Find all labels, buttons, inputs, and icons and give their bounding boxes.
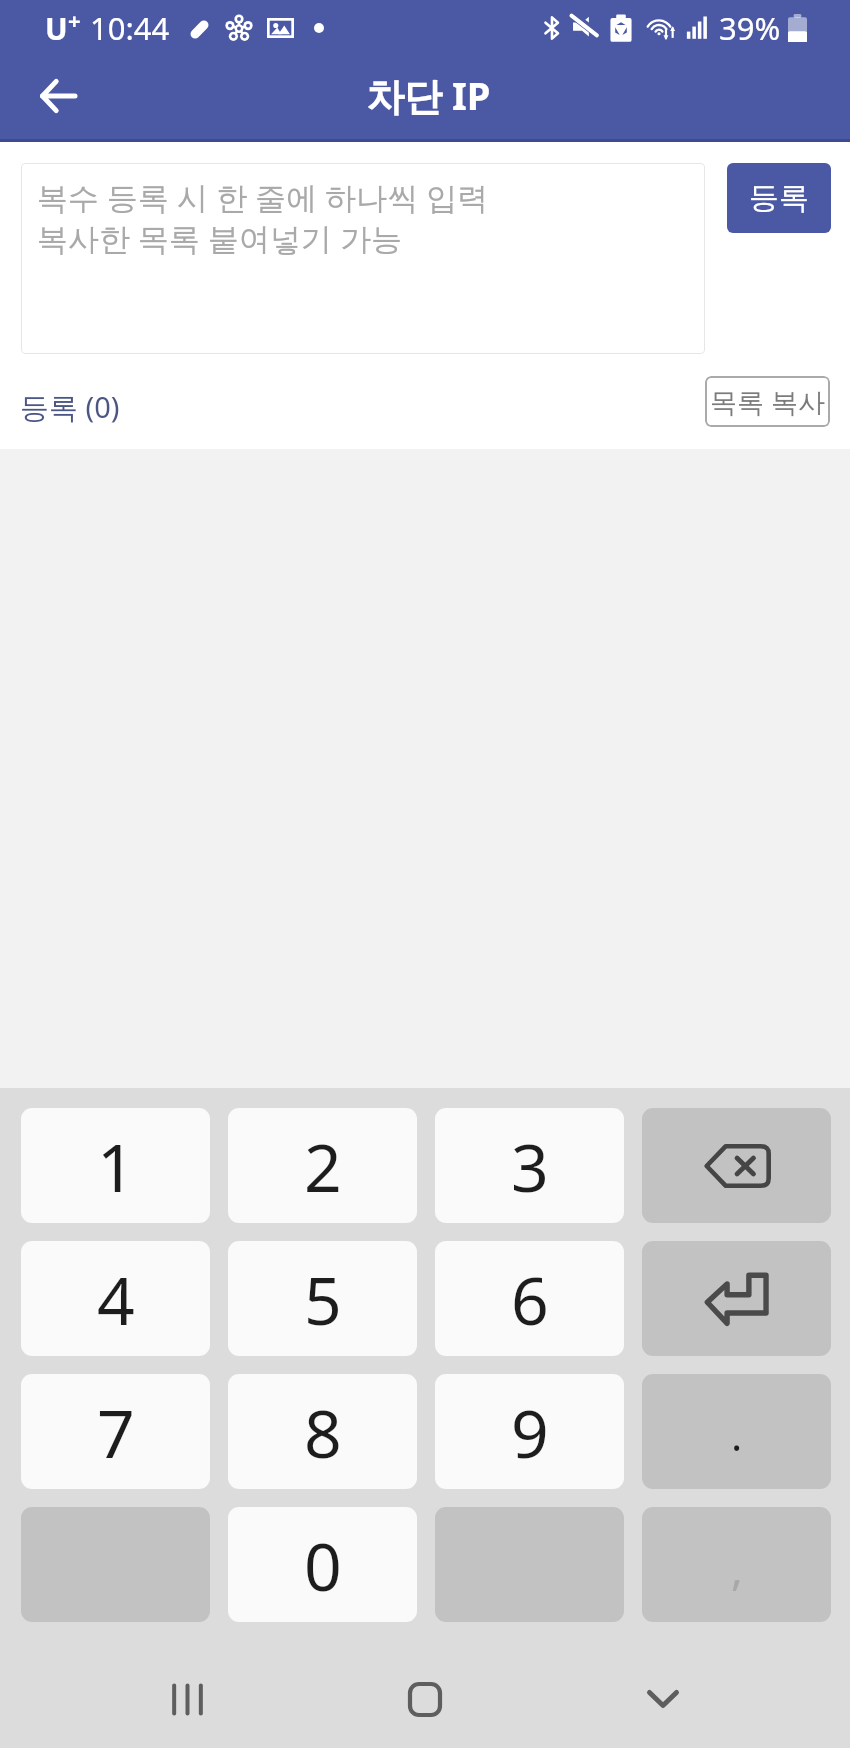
staticText: 7: [97, 1387, 135, 1477]
staticText: 4: [97, 1254, 135, 1344]
staticText: +: [68, 5, 81, 35]
staticText: 복수 등록 시 한 줄에 하나씩 입력 복사한 목록 붙여넣기 가능: [37, 176, 489, 260]
staticText: 5: [304, 1254, 342, 1344]
staticText: 1: [97, 1121, 135, 1211]
staticText: .: [731, 1406, 743, 1463]
button[interactable]: 5: [228, 1241, 417, 1356]
staticText: ,: [731, 1538, 743, 1598]
button[interactable]: Hide keyboard: [613, 1649, 713, 1748]
button[interactable]: 등록: [727, 163, 831, 233]
staticText: 목록 복사: [710, 383, 826, 420]
button[interactable]: 6: [435, 1241, 624, 1356]
staticText: 2: [304, 1121, 342, 1211]
staticText: 9: [511, 1387, 549, 1477]
staticText: 0: [304, 1520, 342, 1610]
button[interactable]: 등록 (0): [20, 387, 120, 427]
button[interactable]: 0: [228, 1507, 417, 1622]
button[interactable]: Enter: [642, 1241, 831, 1356]
staticText: 등록 (0): [20, 387, 120, 427]
button[interactable]: 4: [21, 1241, 210, 1356]
button[interactable]: Home: [375, 1649, 475, 1748]
staticText: 8: [304, 1387, 342, 1477]
staticText: 39%: [719, 7, 781, 49]
button[interactable]: 8: [228, 1374, 417, 1489]
button[interactable]: Period: [642, 1374, 831, 1489]
button[interactable]: 7: [21, 1374, 210, 1489]
button[interactable]: 목록 복사: [705, 376, 830, 427]
staticText: 6: [511, 1254, 549, 1344]
staticText: U: [45, 8, 68, 49]
button[interactable]: 9: [435, 1374, 624, 1489]
button[interactable]: Back: [22, 60, 94, 132]
button[interactable]: 1: [21, 1108, 210, 1223]
button[interactable]: 2: [228, 1108, 417, 1223]
button[interactable]: 3: [435, 1108, 624, 1223]
button[interactable]: Recents: [137, 1649, 237, 1748]
staticText: 10:44: [90, 7, 170, 49]
staticText: 등록: [749, 179, 809, 217]
button[interactable]: Backspace: [642, 1108, 831, 1223]
staticText: 차단 IP: [366, 69, 491, 121]
staticText: 3: [511, 1121, 549, 1211]
button[interactable]: 복수 등록 시 한 줄에 하나씩 입력 복사한 목록 붙여넣기 가능: [21, 163, 705, 354]
